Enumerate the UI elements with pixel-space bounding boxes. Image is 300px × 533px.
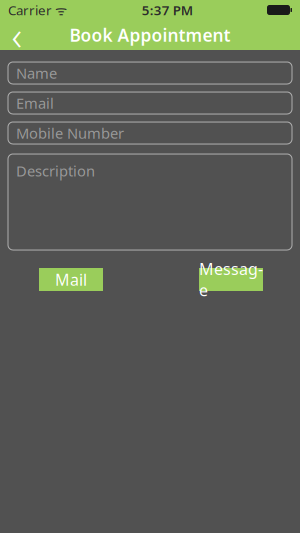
staticText: ‹	[11, 8, 22, 61]
staticText: 5:37 PM	[142, 1, 193, 19]
button[interactable]: Email	[8, 92, 292, 114]
staticText: Name	[16, 63, 57, 83]
button[interactable]: Mobile Number	[8, 122, 292, 144]
button[interactable]: Description	[8, 154, 292, 250]
staticText: Carrier	[8, 1, 52, 19]
button[interactable]: Mail	[39, 268, 103, 291]
button[interactable]: Back	[0, 20, 34, 50]
staticText: Email	[16, 93, 54, 113]
staticText: Message	[199, 258, 263, 301]
staticText: Description	[16, 161, 95, 180]
staticText: ᯤ	[52, 1, 67, 19]
staticText: Mail	[55, 269, 87, 290]
staticText: Book Appointment	[69, 23, 230, 46]
button[interactable]: Name	[8, 62, 292, 84]
button[interactable]: Message	[199, 268, 263, 291]
staticText: Mobile Number	[16, 123, 124, 143]
